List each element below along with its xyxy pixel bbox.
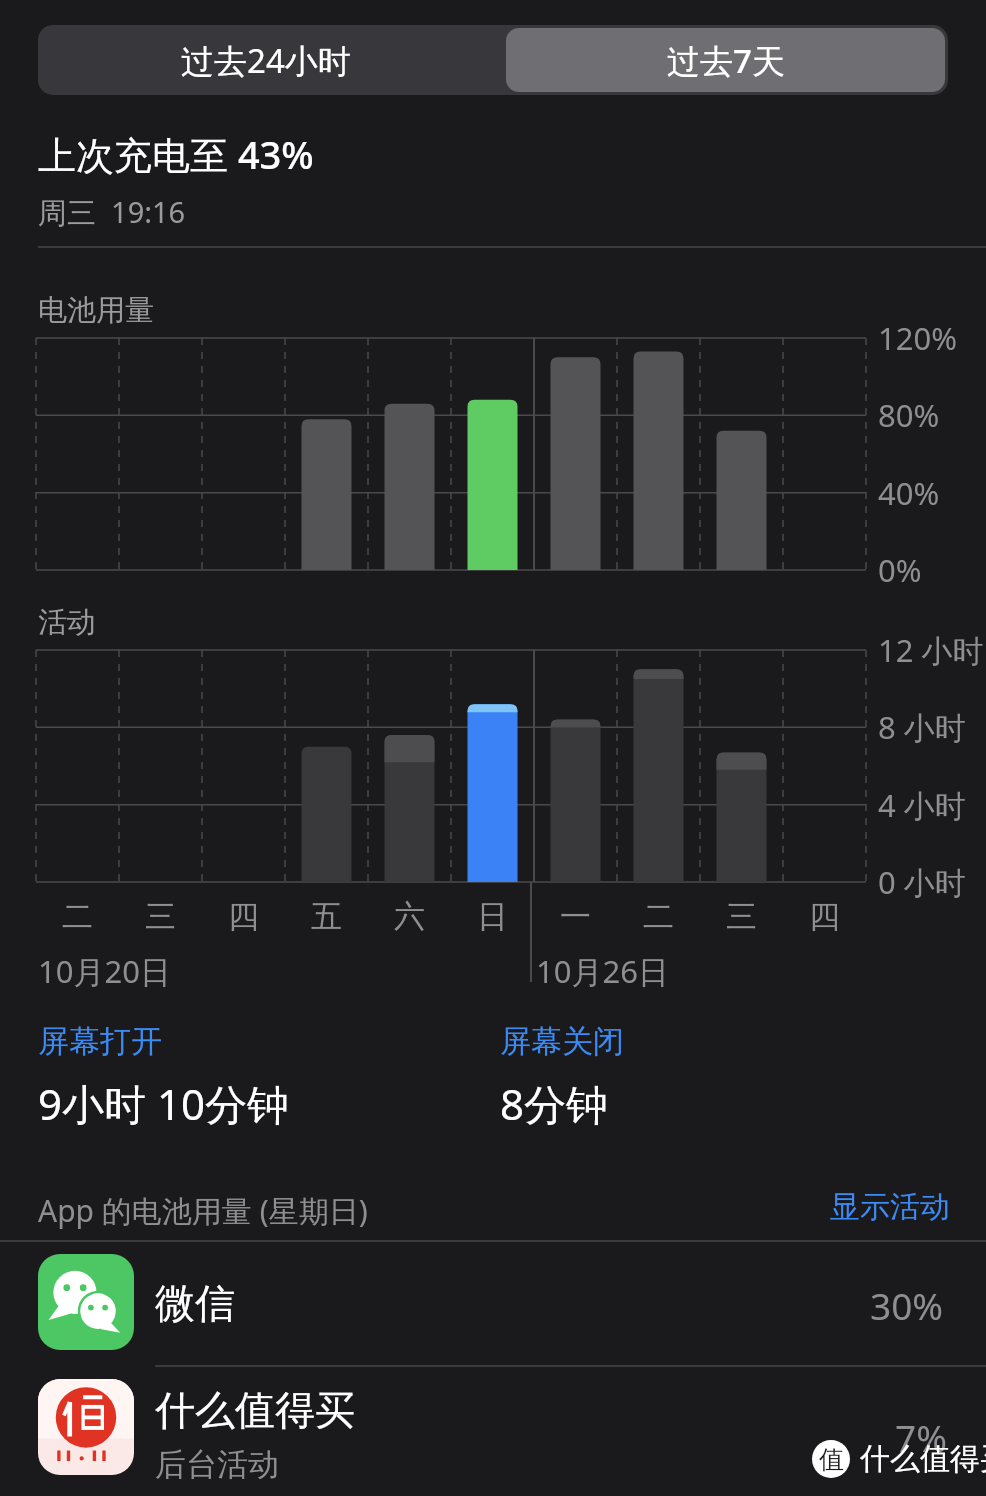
staticText: 电池用量 xyxy=(38,292,154,329)
staticText: 上次充电至 43% xyxy=(38,128,314,180)
staticText: 8分钟 xyxy=(500,1075,609,1132)
staticText: 四 xyxy=(783,897,866,936)
staticText: 一 xyxy=(534,897,617,936)
staticText: 五 xyxy=(285,897,368,936)
staticText: 什么值得买 xyxy=(155,1385,355,1435)
staticText: 0% xyxy=(878,549,922,591)
other: 什么值得买 xyxy=(38,1379,134,1475)
staticText: 过去24小时 xyxy=(181,38,351,83)
staticText: 六 xyxy=(368,897,451,936)
staticText: App 的电池用量 (星期日) xyxy=(38,1190,368,1231)
staticText: 值 xyxy=(819,1444,844,1475)
staticText: 二 xyxy=(617,897,700,936)
staticText: 微信 xyxy=(155,1278,235,1328)
staticText: 周三 19:16 xyxy=(38,192,186,232)
staticText: 屏幕打开 xyxy=(38,1022,162,1061)
staticText: 屏幕关闭 xyxy=(500,1022,624,1061)
staticText: 10月26日 xyxy=(536,950,669,992)
staticText: 30% xyxy=(870,1280,944,1330)
staticText: 三 xyxy=(119,897,202,936)
other: 微信 xyxy=(38,1254,134,1350)
staticText: 9小时 10分钟 xyxy=(38,1075,289,1132)
button[interactable]: 显示活动 xyxy=(760,1182,950,1232)
button[interactable] xyxy=(493,25,948,95)
staticText: 120% xyxy=(878,317,957,359)
staticText: 日 xyxy=(451,897,534,936)
staticText: 什么值得买 xyxy=(860,1440,986,1478)
staticText: 8 小时 xyxy=(878,706,966,748)
staticText: 40% xyxy=(878,472,940,514)
staticText: 四 xyxy=(202,897,285,936)
button[interactable]: 过去7天 xyxy=(506,28,945,92)
staticText: 后台活动 xyxy=(155,1445,279,1484)
staticText: 显示活动 xyxy=(830,1188,950,1226)
button[interactable]: 什么值得买 xyxy=(0,1367,986,1494)
staticText: 二 xyxy=(36,897,119,936)
staticText: 7% xyxy=(895,1412,947,1462)
staticText: 三 xyxy=(700,897,783,936)
staticText: 过去7天 xyxy=(667,38,785,83)
staticText: 0 小时 xyxy=(878,861,966,903)
button[interactable]: 微信 xyxy=(0,1240,986,1365)
staticText: 活动 xyxy=(38,604,96,641)
button[interactable]: 过去24小时 xyxy=(38,25,493,95)
staticText: 10月20日 xyxy=(38,950,171,992)
staticText: 4 小时 xyxy=(878,784,966,826)
staticText: 80% xyxy=(878,394,940,436)
staticText: 12 小时 xyxy=(878,629,984,671)
